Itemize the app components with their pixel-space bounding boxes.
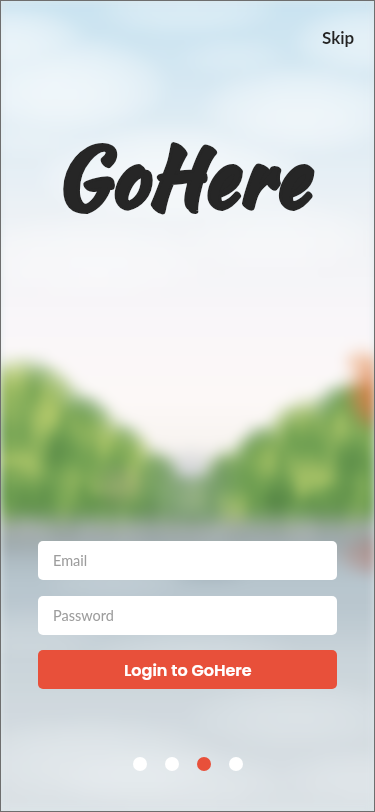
button[interactable]: Email [38, 541, 337, 580]
staticText: Login to GoHere [124, 659, 252, 681]
staticText: Email [53, 552, 88, 569]
staticText: GoHere [55, 118, 311, 234]
button[interactable]: Login to GoHere [38, 650, 337, 689]
button[interactable]: Page 4 [220, 754, 252, 774]
button[interactable]: Page 3 [188, 754, 220, 774]
staticText: GoHere [55, 118, 311, 234]
button[interactable]: Page 1 [124, 754, 156, 774]
button[interactable]: Skip [314, 19, 363, 55]
button[interactable]: Page 2 [156, 754, 188, 774]
staticText: Password [53, 607, 114, 624]
button[interactable]: Password [38, 596, 337, 635]
staticText: Skip [322, 27, 355, 47]
